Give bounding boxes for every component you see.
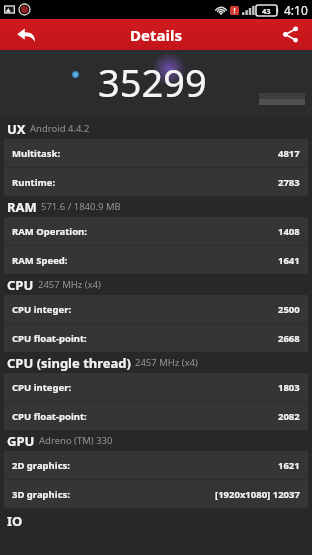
button[interactable]: 3D graphics:: [4, 480, 308, 508]
staticText: 1641: [278, 254, 300, 267]
staticText: 43: [262, 6, 271, 16]
staticText: Details: [130, 25, 182, 45]
staticText: [1920x1080] 12037: [215, 488, 300, 501]
staticText: RAM Speed:: [12, 254, 68, 267]
button[interactable]: Share: [268, 19, 312, 50]
staticText: 2668: [278, 332, 300, 345]
staticText: CPU: [7, 276, 34, 294]
staticText: UX: [7, 120, 26, 138]
staticText: RAM: [7, 198, 37, 216]
staticText: Runtime:: [12, 176, 56, 189]
staticText: 2082: [278, 410, 300, 423]
staticText: CPU integer:: [12, 381, 72, 394]
staticText: CPU float-point:: [12, 410, 87, 423]
staticText: 4:10: [284, 2, 308, 18]
staticText: Multitask:: [12, 147, 61, 160]
staticText: 35299: [98, 56, 207, 108]
staticText: Adreno (TM) 330: [39, 434, 113, 447]
staticText: IO: [7, 512, 23, 526]
staticText: 2783: [278, 176, 300, 189]
staticText: 1408: [278, 225, 300, 238]
staticText: CPU (single thread): [7, 354, 131, 372]
staticText: RAM Operation:: [12, 225, 87, 238]
staticText: 2D graphics:: [12, 459, 70, 472]
staticText: 2500: [278, 303, 300, 316]
button[interactable]: CPU integer:: [4, 373, 308, 401]
button[interactable]: CPU integer:: [4, 295, 308, 323]
staticText: GPU: [7, 432, 35, 450]
staticText: 571.6 / 1840.9 MB: [41, 200, 121, 213]
button[interactable]: Runtime:: [4, 168, 308, 196]
staticText: 2457 MHz (x4): [38, 278, 101, 291]
button[interactable]: 2D graphics:: [4, 451, 308, 479]
staticText: CPU float-point:: [12, 332, 87, 345]
staticText: CPU integer:: [12, 303, 72, 316]
staticText: 1803: [278, 381, 300, 394]
button[interactable]: CPU float-point:: [4, 324, 308, 352]
button[interactable]: CPU float-point:: [4, 402, 308, 430]
staticText: 4817: [278, 147, 300, 160]
button[interactable]: Multitask:: [4, 139, 308, 167]
staticText: 3D graphics:: [12, 488, 70, 501]
staticText: Android 4.4.2: [30, 122, 90, 135]
staticText: 2457 MHz (x4): [135, 356, 198, 369]
button[interactable]: Back: [0, 19, 52, 50]
staticText: 1621: [278, 459, 300, 472]
button[interactable]: RAM Speed:: [4, 246, 308, 274]
button[interactable]: RAM Operation:: [4, 217, 308, 245]
